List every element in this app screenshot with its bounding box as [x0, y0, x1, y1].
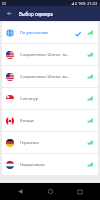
button[interactable]: Канада	[2, 110, 98, 131]
button[interactable]: Back	[0, 6, 18, 21]
staticText: Германия	[20, 140, 73, 145]
button[interactable]: Сингапур	[2, 88, 98, 109]
staticText: Сингапур	[20, 96, 73, 101]
staticText: Соединенные Штаты: за…	[20, 52, 73, 57]
button[interactable]: По умолчанию	[2, 22, 98, 43]
staticText: Выбор сервера	[19, 11, 53, 17]
button[interactable]: Recent apps	[71, 183, 88, 200]
button[interactable]: Соединенные Штаты: за…	[2, 44, 98, 65]
staticText: По умолчанию	[20, 30, 73, 35]
staticText: Соединенные Штаты: во…	[20, 74, 73, 79]
staticText: Канада	[20, 118, 73, 123]
button[interactable]: Нидерланды	[2, 154, 98, 175]
button[interactable]: Back	[12, 183, 29, 200]
button[interactable]: Германия	[2, 132, 98, 153]
button[interactable]: Home	[42, 183, 59, 200]
button[interactable]: Соединенные Штаты: во…	[2, 66, 98, 87]
staticText: 16% 21:22	[78, 1, 98, 6]
staticText: Нидерланды	[20, 162, 73, 167]
